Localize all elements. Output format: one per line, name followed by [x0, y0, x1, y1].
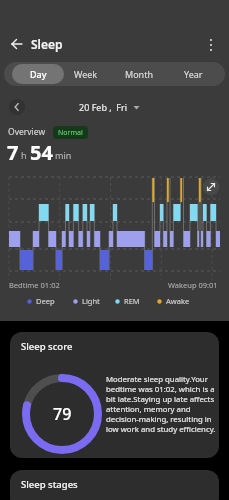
button[interactable]: Sleep stages — [10, 470, 219, 500]
button[interactable]: 20 Feb , Fri — [0, 97, 224, 117]
button[interactable]: Month — [112, 62, 166, 86]
staticText: Week — [74, 68, 98, 80]
staticText: Awake — [166, 296, 190, 306]
button[interactable]: Year — [166, 62, 220, 86]
staticText: min — [55, 149, 72, 161]
button[interactable]: Day — [12, 64, 64, 84]
staticText: Light — [82, 296, 100, 306]
staticText: REM — [124, 296, 140, 306]
staticText: 54 — [30, 139, 53, 165]
staticText: Sleep score — [21, 340, 73, 353]
staticText: Moderate sleep quality.Your bedtime was … — [106, 374, 216, 434]
button[interactable] — [9, 99, 25, 115]
staticText: Year — [184, 68, 203, 80]
staticText: Bedtime 01:02 — [9, 280, 60, 290]
staticText: Sleep stages — [21, 478, 78, 491]
button[interactable]: Sleep score — [10, 332, 219, 458]
button[interactable]: Week — [59, 62, 113, 86]
staticText: Deep — [36, 296, 55, 306]
staticText: 20 Feb , Fri — [79, 101, 128, 113]
staticText: 7 — [7, 139, 19, 165]
staticText: 79 — [53, 403, 72, 425]
staticText: Wakeup 09:01 — [168, 280, 218, 290]
staticText: h — [21, 149, 27, 161]
button[interactable] — [203, 36, 219, 54]
staticText: Normal — [58, 128, 83, 138]
staticText: Day — [30, 68, 47, 80]
staticText: Overview — [8, 126, 46, 138]
staticText: Month — [125, 68, 153, 80]
button[interactable] — [6, 36, 24, 54]
staticText: Sleep — [31, 36, 63, 52]
